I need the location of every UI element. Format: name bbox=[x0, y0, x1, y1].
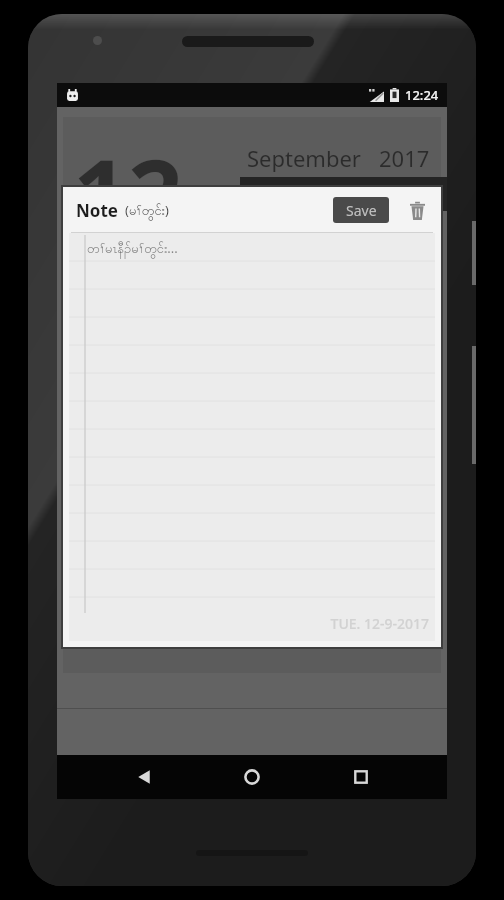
button[interactable]: တၢ်မၤနီၣ်မၢ်တွင်း... bbox=[69, 233, 435, 641]
staticText: (မၢ်တွင်း) bbox=[125, 201, 169, 221]
staticText: 12 bbox=[73, 127, 183, 258]
staticText: 12:24 bbox=[405, 86, 439, 104]
staticText: TUE. 12-9-2017 bbox=[330, 614, 429, 633]
button[interactable]: Back bbox=[122, 755, 166, 799]
staticText: Save bbox=[346, 201, 377, 220]
button[interactable]: Recent apps bbox=[339, 755, 383, 799]
staticText: Tuesday bbox=[311, 183, 377, 206]
staticText: 2017 bbox=[379, 143, 430, 173]
staticText: September bbox=[247, 143, 361, 173]
button[interactable]: Save bbox=[333, 197, 389, 223]
button[interactable]: Delete note bbox=[403, 196, 431, 224]
staticText: Note bbox=[76, 199, 118, 222]
button[interactable]: Home bbox=[230, 755, 274, 799]
staticText: တၢ်မၤနီၣ်မၢ်တွင်း... bbox=[87, 239, 178, 259]
